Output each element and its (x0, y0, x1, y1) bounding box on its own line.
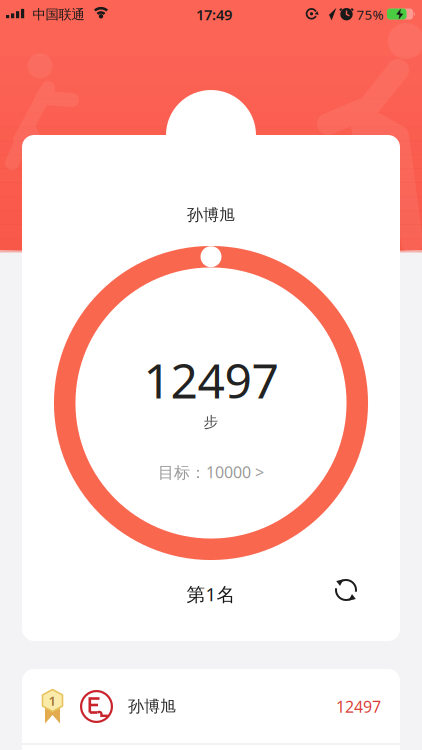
staticText: 1 (48, 692, 56, 709)
staticText: 12497 (143, 348, 278, 412)
staticText: 第1名 (186, 582, 235, 606)
button[interactable]: 1 (22, 669, 400, 744)
staticText: 孙博旭 (128, 697, 176, 716)
staticText: 孙博旭 (187, 205, 235, 225)
staticText: 17:49 (196, 5, 232, 24)
staticText: 步 (203, 413, 218, 431)
button[interactable]: 刷新 (331, 575, 361, 605)
button[interactable]: 目标：10000 > (158, 461, 264, 483)
staticText: 75% (356, 6, 383, 23)
staticText: 目标：10000 > (158, 461, 264, 483)
staticText: 12497 (336, 696, 381, 717)
staticText: 中国联通 (32, 6, 84, 23)
